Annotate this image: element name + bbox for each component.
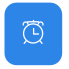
- button[interactable]: Alarm: [0, 0, 69, 69]
